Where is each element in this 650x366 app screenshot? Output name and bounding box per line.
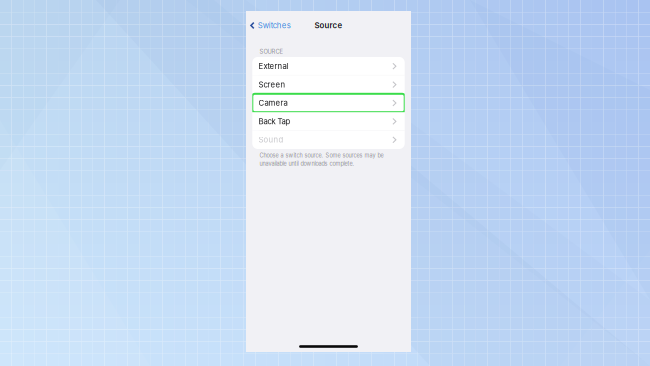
staticText: Choose a switch source. Some sources may… — [259, 152, 383, 159]
button[interactable]: Back Tap — [252, 112, 405, 131]
button[interactable]: Switches — [246, 16, 297, 35]
button[interactable]: Camera — [252, 94, 405, 112]
staticText: Back Tap — [259, 117, 291, 126]
staticText: Screen — [259, 80, 286, 89]
staticText: Switches — [258, 21, 291, 30]
button[interactable]: Screen — [252, 75, 405, 94]
staticText: SOURCE — [259, 48, 283, 55]
button[interactable]: Sound — [252, 131, 405, 149]
button[interactable]: External — [252, 57, 405, 75]
staticText: Camera — [259, 98, 288, 108]
staticText: External — [259, 61, 289, 71]
staticText: Source — [314, 20, 342, 30]
staticText: Sound — [259, 135, 284, 144]
staticText: unavailable until downloads complete. — [259, 160, 354, 167]
